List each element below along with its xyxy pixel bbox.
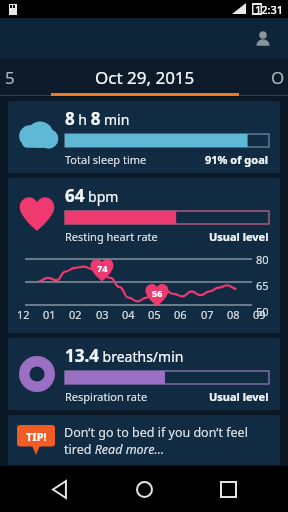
staticText: Oct 29, 2015 (95, 66, 195, 89)
staticText: Respiration rate (65, 389, 148, 404)
staticText: 64 bpm (65, 184, 119, 207)
staticText: 05 (148, 307, 161, 322)
staticText: 07 (201, 307, 214, 322)
button[interactable]: O (239, 59, 288, 96)
button[interactable]: Home (120, 466, 168, 512)
staticText: 13.4 breaths/min (65, 344, 184, 367)
button[interactable]: Back (36, 466, 84, 512)
button[interactable]: Recents (204, 466, 252, 512)
staticText: 56 (152, 287, 163, 299)
staticText: 01 (43, 307, 56, 322)
staticText: 65 (256, 278, 269, 293)
staticText: TIP! (26, 429, 47, 444)
staticText: 12:31 (255, 2, 284, 17)
staticText: Total sleep time (65, 152, 147, 167)
staticText: Usual level (209, 389, 269, 404)
staticText: 5 (5, 66, 15, 89)
staticText: 09 (253, 307, 266, 322)
staticText: Don’t go to bed if you don’t feel tired … (64, 424, 272, 457)
staticText: Resting heart rate (65, 229, 158, 244)
staticText: 50 (256, 304, 269, 319)
button[interactable]: TIP! (8, 415, 280, 465)
staticText: 03 (96, 307, 109, 322)
staticText: 04 (122, 307, 135, 322)
button[interactable]: Profile (250, 26, 276, 52)
button[interactable]: 8 h 8 min (8, 101, 280, 173)
button[interactable]: 5 (0, 59, 51, 96)
staticText: O (271, 66, 285, 89)
staticText: Usual level (209, 229, 269, 244)
button[interactable]: 13.4 breaths/min (8, 338, 280, 410)
staticText: 02 (69, 307, 82, 322)
button[interactable]: 64 bpm (8, 178, 280, 333)
staticText: 91% of goal (205, 152, 269, 167)
staticText: 8 h 8 min (65, 107, 130, 130)
staticText: 74 (97, 262, 108, 274)
staticText: 08 (227, 307, 240, 322)
staticText: 80 (256, 252, 269, 267)
button[interactable]: Oct 29, 2015 (51, 59, 239, 96)
staticText: 06 (174, 307, 187, 322)
staticText: 12 (17, 307, 30, 322)
